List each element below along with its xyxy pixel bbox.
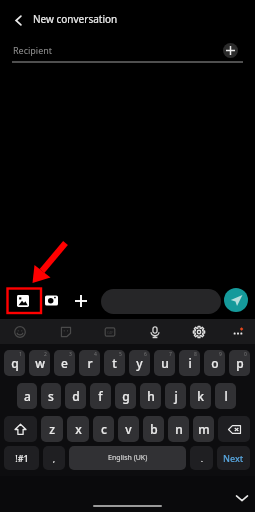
button[interactable]: Back [7, 9, 29, 31]
button[interactable]: f [90, 383, 111, 409]
staticText: 5 [119, 351, 122, 358]
staticText: n [175, 421, 183, 437]
button[interactable]: Next [217, 446, 250, 470]
staticText: u [161, 355, 169, 371]
button[interactable]: Backspace [218, 416, 250, 442]
staticText: a [24, 388, 31, 404]
staticText: Recipient [13, 44, 53, 56]
button[interactable]: Add recipient [223, 43, 238, 58]
staticText: 2 [44, 351, 47, 358]
staticText: New conversation [33, 12, 118, 26]
button[interactable]: Shift [4, 416, 37, 442]
button[interactable]: u [154, 350, 175, 376]
button[interactable]: More attachments [68, 288, 93, 313]
staticText: s [48, 388, 54, 404]
button[interactable]: Stickers [55, 321, 77, 343]
button[interactable]: g [115, 383, 136, 409]
button[interactable]: Hide keyboard [231, 487, 252, 508]
staticText: r [87, 355, 93, 371]
staticText: j [174, 388, 178, 404]
button[interactable]: v [118, 416, 139, 442]
staticText: w [35, 355, 45, 371]
button[interactable]: Voice input [144, 321, 166, 343]
button[interactable]: c [93, 416, 114, 442]
staticText: t [112, 355, 117, 371]
button[interactable]: Message text field [101, 289, 221, 314]
staticText: 6 [144, 351, 147, 358]
button[interactable]: o [204, 350, 225, 376]
button[interactable]: Emoji [9, 321, 31, 343]
button[interactable]: Camera [39, 288, 64, 313]
staticText: 1 [19, 351, 22, 358]
button[interactable]: Send [224, 288, 248, 312]
staticText: p [236, 355, 244, 371]
button[interactable]: a [17, 383, 37, 409]
button[interactable]: h [140, 383, 161, 409]
staticText: 3 [69, 351, 72, 358]
button[interactable]: GIF [99, 321, 121, 343]
staticText: i [188, 355, 192, 371]
staticText: Next [223, 452, 244, 464]
staticText: !#1 [15, 452, 29, 464]
staticText: English (UK) [108, 453, 148, 463]
button[interactable]: t [104, 350, 125, 376]
staticText: v [125, 421, 132, 437]
staticText: 4 [94, 351, 97, 358]
button[interactable]: English (UK) [69, 446, 186, 470]
staticText: z [49, 421, 55, 437]
staticText: f [98, 388, 103, 404]
button[interactable]: n [168, 416, 189, 442]
button[interactable]: z [41, 416, 63, 442]
staticText: GIF [107, 330, 114, 335]
staticText: o [211, 355, 219, 371]
button[interactable]: r [79, 350, 100, 376]
button[interactable]: . [190, 446, 213, 470]
staticText: . [201, 455, 203, 465]
staticText: b [150, 421, 158, 437]
staticText: c [101, 421, 107, 437]
button[interactable]: s [41, 383, 61, 409]
button[interactable]: x [67, 416, 89, 442]
staticText: g [122, 388, 130, 404]
button[interactable]: m [193, 416, 214, 442]
button[interactable]: y [129, 350, 150, 376]
button[interactable]: Gallery [10, 288, 35, 313]
staticText: x [75, 421, 82, 437]
staticText: k [197, 388, 204, 404]
staticText: q [11, 355, 19, 371]
staticText: m [198, 421, 210, 437]
button[interactable]: l [215, 383, 236, 409]
staticText: y [136, 355, 143, 371]
button[interactable]: k [190, 383, 211, 409]
button[interactable]: i [179, 350, 200, 376]
staticText: 9 [219, 351, 222, 358]
button[interactable]: Settings [188, 321, 210, 343]
staticText: d [72, 388, 80, 404]
staticText: 0 [244, 351, 247, 358]
staticText: 7 [169, 351, 172, 358]
button[interactable]: !#1 [4, 446, 39, 470]
button[interactable]: d [65, 383, 86, 409]
button[interactable]: b [143, 416, 164, 442]
button[interactable]: w [29, 350, 50, 376]
staticText: l [224, 388, 228, 404]
button[interactable]: More [227, 321, 249, 343]
button[interactable]: , [43, 446, 65, 470]
staticText: 8 [194, 351, 197, 358]
button[interactable]: e [54, 350, 75, 376]
staticText: h [147, 388, 155, 404]
staticText: e [61, 355, 68, 371]
button[interactable]: j [165, 383, 186, 409]
button[interactable]: p [229, 350, 250, 376]
button[interactable]: q [4, 350, 25, 376]
staticText: , [53, 455, 55, 465]
